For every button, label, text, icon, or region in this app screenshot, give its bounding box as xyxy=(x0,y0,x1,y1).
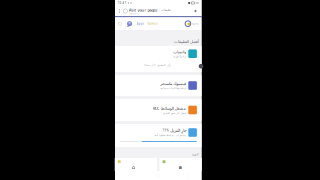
staticText: واتساب xyxy=(173,50,186,54)
button[interactable]: Apps xyxy=(137,17,144,30)
staticText: ▪ xyxy=(178,164,182,170)
staticText: تطبيقات xyxy=(161,8,171,11)
staticText: visit.sitename.net xyxy=(129,13,139,15)
staticText: 79% xyxy=(162,129,168,132)
button[interactable]: Recent apps xyxy=(173,171,201,180)
staticText: – xyxy=(159,8,160,12)
button[interactable]: Account xyxy=(127,17,133,30)
staticText: Visit your pages xyxy=(129,7,158,12)
staticText: المزيد xyxy=(191,153,198,156)
staticText: Apps xyxy=(137,22,144,25)
staticText: ⌂ xyxy=(132,164,135,170)
staticText: Games xyxy=(147,22,157,25)
staticText: نزّل التطبيق الآن مجانًا xyxy=(143,63,170,66)
button[interactable]: Visit your pages xyxy=(129,6,189,16)
staticText: store xyxy=(192,22,199,25)
button[interactable]: store xyxy=(185,17,199,30)
button[interactable]: ▪ xyxy=(159,158,202,171)
staticText: 10:41 xyxy=(118,1,127,5)
button[interactable]: فيسبوك ماسنجر xyxy=(115,75,201,96)
staticText: فيسبوك ماسنجر xyxy=(160,81,186,86)
button[interactable]: 79% xyxy=(115,124,201,147)
button[interactable]: واتساب xyxy=(115,46,201,72)
button[interactable]: VLC مشغل الوسائط xyxy=(115,99,201,121)
staticText: يشغّل كل صيغ الفيديو xyxy=(163,111,186,114)
staticText: دردشة ومكالمات مجانية xyxy=(160,87,186,90)
staticText: تيليجرام · مراسلة مشفّرة آمنة xyxy=(154,133,186,137)
button[interactable]: Games xyxy=(147,17,157,30)
button[interactable]: ⌂ xyxy=(115,158,157,171)
staticText: VLC مشغل الوسائط xyxy=(153,105,186,111)
button[interactable]: New tab xyxy=(191,6,200,16)
staticText: أفضل التطبيقات xyxy=(173,39,198,44)
button[interactable]: Site menu xyxy=(117,17,122,30)
staticText: مراسلة فورية xyxy=(173,55,186,58)
button[interactable]: Page menu xyxy=(117,6,122,16)
staticText: جارٍ التنزيل xyxy=(170,128,186,133)
